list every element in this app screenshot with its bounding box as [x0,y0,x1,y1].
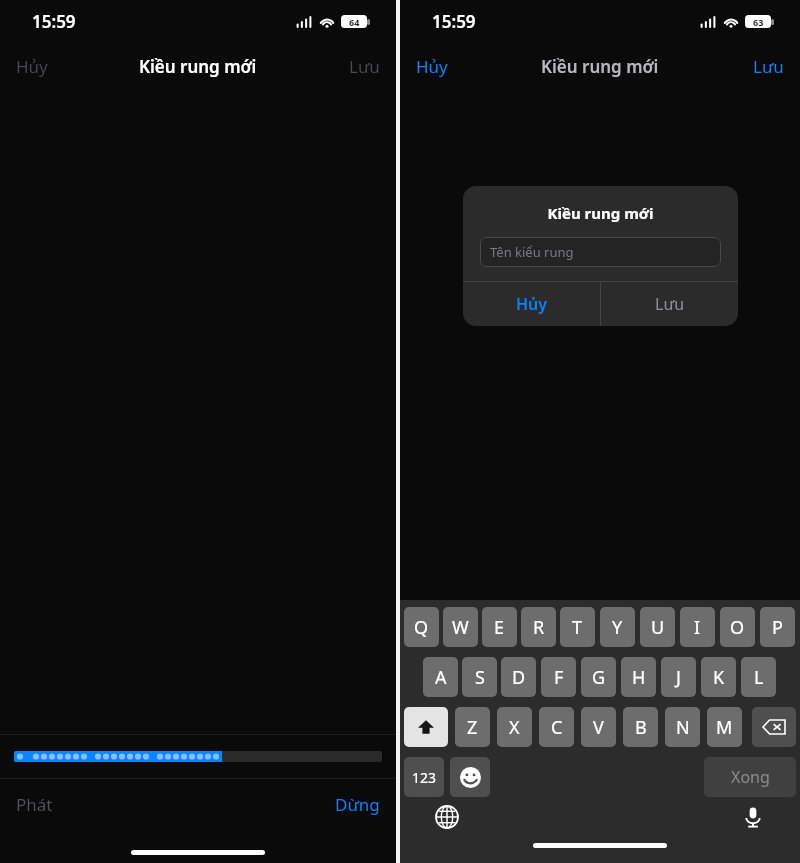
staticText: Kiều rung mới [463,203,738,223]
button[interactable]: Hủy [400,47,464,86]
staticText: B [635,715,647,740]
button[interactable]: G [581,657,616,697]
button[interactable]: L [741,657,776,697]
button[interactable]: P [760,607,795,647]
button[interactable]: Lưu [333,47,396,86]
button[interactable]: Y [600,607,635,647]
button[interactable]: K [701,657,736,697]
button[interactable]: Hủy [463,282,600,326]
button[interactable]: H [621,657,656,697]
button[interactable]: R [521,607,556,647]
button[interactable]: Emoji [450,757,490,797]
staticText: S [475,665,485,690]
staticText: Lưu [753,55,784,78]
button[interactable]: Shift [404,707,448,747]
staticText: R [533,615,545,640]
staticText: 63 [753,16,764,28]
button[interactable]: C [539,707,574,747]
staticText: Xong [731,766,770,788]
staticText: Phát [16,793,53,816]
button[interactable]: W [443,607,478,647]
staticText: Y [612,615,623,640]
staticText: Tên kiểu rung [490,243,574,261]
staticText: J [676,665,681,690]
button[interactable]: Phát [0,785,69,824]
staticText: Kiều rung mới [139,55,257,78]
button[interactable]: B [623,707,658,747]
button[interactable]: M [707,707,742,747]
staticText: V [593,715,604,740]
button[interactable]: Change keyboard [434,804,460,830]
staticText: K [713,665,725,690]
staticText: Z [467,715,478,740]
staticText: T [572,615,583,640]
staticText: Lưu [349,55,380,78]
button[interactable]: A [423,657,458,697]
button[interactable]: E [482,607,517,647]
staticText: X [509,715,520,740]
button[interactable]: X [497,707,532,747]
button[interactable]: J [661,657,696,697]
button[interactable]: Hủy [0,47,64,86]
button[interactable]: Z [455,707,490,747]
staticText: 15:59 [432,10,476,33]
staticText: P [772,615,783,640]
button[interactable]: Q [404,607,439,647]
staticText: 123 [412,768,437,787]
staticText: H [632,665,646,690]
staticText: L [754,665,764,690]
button[interactable]: Tên kiểu rung [480,237,721,267]
staticText: M [716,715,733,740]
button[interactable]: F [541,657,576,697]
staticText: G [592,665,606,690]
button[interactable]: Lưu [601,282,738,326]
button[interactable]: I [680,607,715,647]
staticText: Kiều rung mới [541,55,659,78]
button[interactable]: V [581,707,616,747]
staticText: D [512,665,526,690]
staticText: U [651,615,665,640]
button[interactable]: D [501,657,536,697]
button[interactable]: Delete [752,707,796,747]
button[interactable]: U [640,607,675,647]
button[interactable]: Lưu [737,47,800,86]
staticText: Hủy [516,293,548,315]
button[interactable]: T [560,607,595,647]
staticText: Q [414,615,429,640]
button[interactable]: 123 [404,757,444,797]
staticText: I [694,615,701,640]
staticText: O [730,615,745,640]
button[interactable]: N [665,707,700,747]
button[interactable]: O [720,607,755,647]
staticText: W [452,615,469,640]
button[interactable]: Dictation [740,804,766,830]
staticText: E [494,615,505,640]
staticText: Hủy [416,55,448,78]
staticText: A [435,665,447,690]
button[interactable]: S [462,657,497,697]
staticText: 64 [349,16,360,28]
button[interactable]: Dừng [319,785,396,824]
staticText: 15:59 [32,10,76,33]
staticText: Dừng [335,793,380,816]
staticText: N [676,715,690,740]
staticText: F [554,665,564,690]
staticText: C [551,715,563,740]
staticText: Hủy [16,55,48,78]
button[interactable]: Xong [704,757,796,797]
staticText: Lưu [655,293,685,315]
